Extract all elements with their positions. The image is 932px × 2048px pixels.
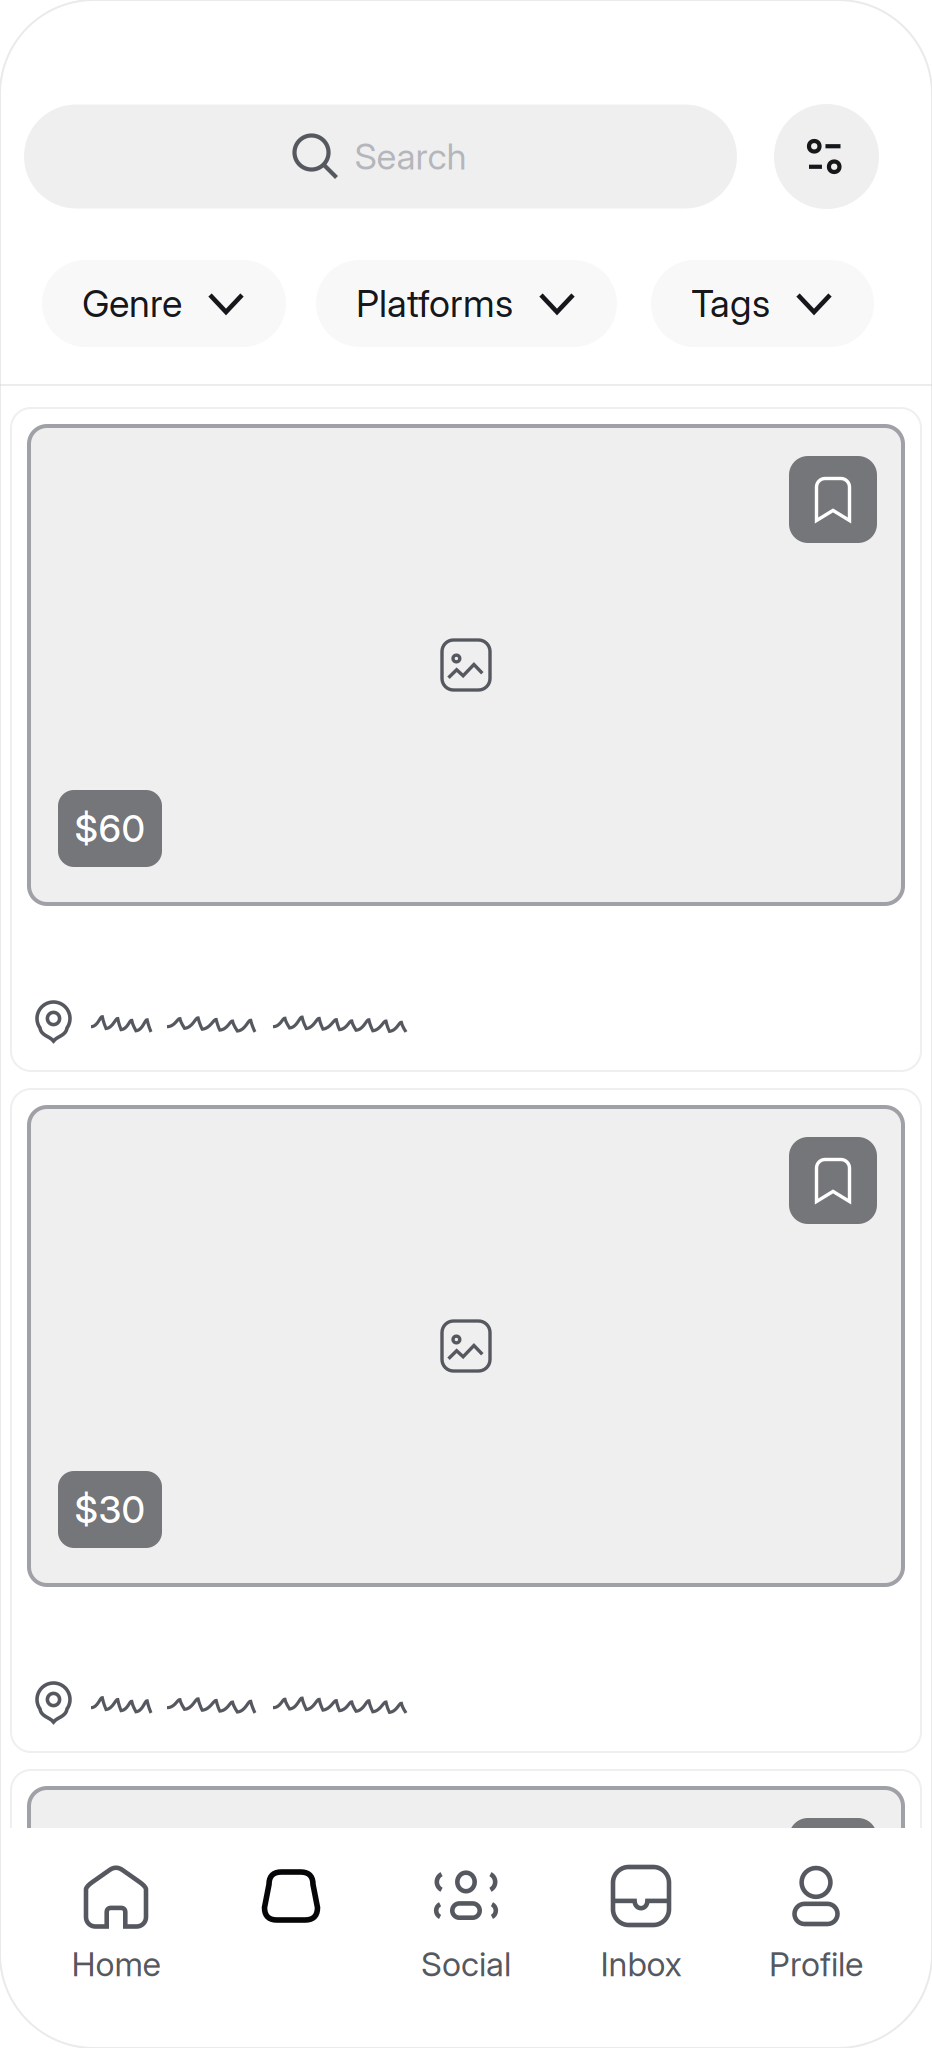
staticText: Tags — [691, 281, 770, 326]
button[interactable] — [203, 1828, 378, 2048]
button[interactable]: Save listing — [789, 456, 877, 543]
staticText: Inbox — [600, 1944, 681, 1984]
button[interactable]: Profile — [728, 1828, 903, 2048]
button[interactable]: Tags — [651, 260, 874, 347]
button[interactable]: Save listing — [789, 1137, 877, 1224]
button[interactable]: Filters — [774, 104, 879, 209]
staticText: Genre — [82, 281, 182, 326]
staticText: $60 — [74, 806, 145, 851]
staticText: Home — [71, 1944, 160, 1984]
staticText: Profile — [769, 1944, 863, 1984]
button[interactable]: Social — [378, 1828, 553, 2048]
button[interactable]: Platforms — [316, 260, 617, 347]
staticText: Social — [421, 1944, 511, 1984]
staticText: $30 — [74, 1487, 145, 1532]
button[interactable]: Inbox — [553, 1828, 728, 2048]
staticText: Search — [354, 135, 466, 178]
button[interactable]: Genre — [42, 260, 286, 347]
button[interactable]: Home — [28, 1828, 203, 2048]
staticText: Platforms — [356, 281, 513, 326]
button[interactable]: Save listing — [789, 1818, 877, 1905]
